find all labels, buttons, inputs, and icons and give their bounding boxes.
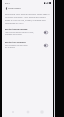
button[interactable]: Toggle	[44, 44, 48, 47]
staticText: Your phone restarts when it's idle, char…	[5, 31, 34, 35]
button[interactable]: Recents	[38, 108, 46, 116]
staticText: Auto restart	[8, 7, 21, 10]
button[interactable]: Restart on schedule	[5, 41, 51, 48]
button[interactable]: Back	[9, 108, 17, 116]
button[interactable]: Home	[24, 108, 32, 116]
staticText: Pick a weekly day and time for a restart	[5, 44, 28, 48]
button[interactable]: Toggle	[44, 31, 48, 34]
staticText: Restarting your phone regularly helps ke…	[5, 13, 51, 25]
staticText: Restart when needed	[5, 28, 28, 31]
staticText: 9:41	[5, 1, 10, 4]
button[interactable]: Restart when needed	[5, 28, 51, 35]
staticText: Restart on schedule	[5, 41, 26, 44]
button[interactable]: Back	[4, 6, 9, 11]
